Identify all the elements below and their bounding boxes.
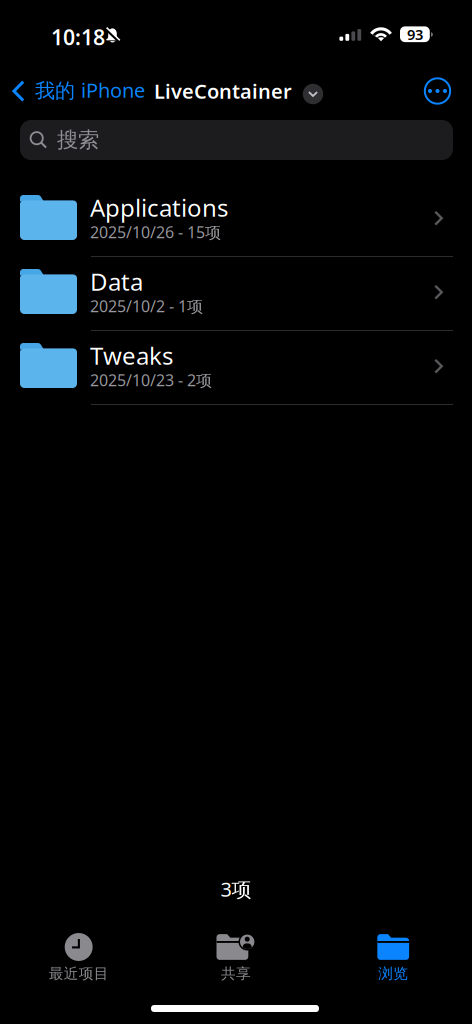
staticText: 3项 <box>220 876 251 902</box>
button[interactable]: 我的 iPhone <box>12 77 154 105</box>
staticText: 浏览 <box>378 964 408 982</box>
staticText: 93 <box>407 24 423 44</box>
button[interactable]: 共享 <box>157 933 315 981</box>
button[interactable]: Folder actions <box>296 77 330 111</box>
staticText: 2025/10/26 - 15项 <box>90 221 221 243</box>
staticText: 2025/10/2 - 1项 <box>90 295 203 317</box>
staticText: Tweaks <box>90 340 173 371</box>
button[interactable]: 最近项目 <box>0 933 157 981</box>
staticText: Applications <box>90 192 228 223</box>
button[interactable]: Tweaks <box>0 331 472 405</box>
staticText: 我的 iPhone <box>35 77 145 103</box>
staticText: 最近项目 <box>49 964 109 982</box>
button[interactable]: More <box>415 69 459 113</box>
staticText: 10:18 <box>51 23 105 51</box>
button[interactable]: 浏览 <box>315 933 472 981</box>
staticText: Data <box>90 266 143 297</box>
button[interactable]: 搜索 <box>20 120 453 160</box>
staticText: LiveContainer <box>154 78 292 104</box>
button[interactable]: Applications <box>0 183 472 257</box>
staticText: 2025/10/23 - 2项 <box>90 369 212 391</box>
staticText: 共享 <box>221 964 251 982</box>
staticText: 搜索 <box>57 127 99 153</box>
button[interactable]: Data <box>0 257 472 331</box>
